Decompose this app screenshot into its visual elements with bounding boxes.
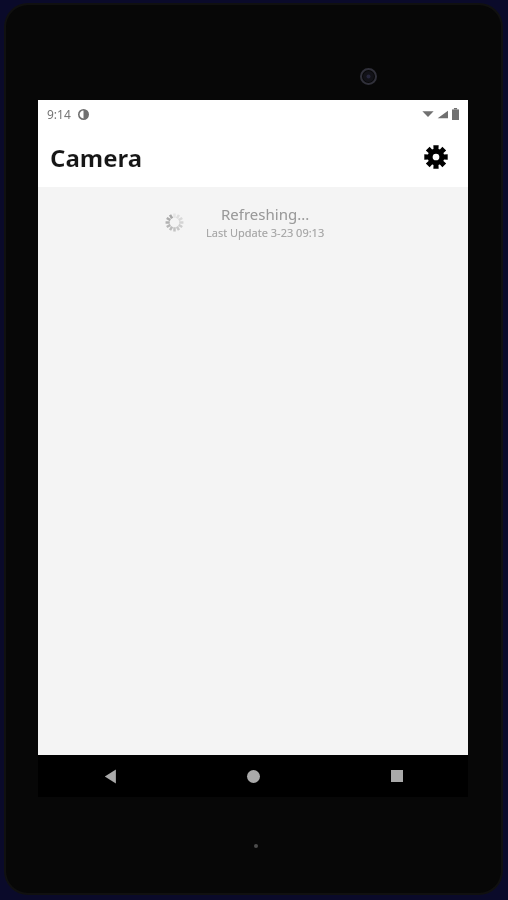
staticText: Refreshing... (221, 204, 310, 224)
staticText: Camera (50, 141, 143, 174)
button[interactable]: Back (38, 755, 182, 797)
button[interactable]: Refreshing... (165, 204, 341, 240)
staticText: 9:14 (47, 106, 71, 122)
button[interactable]: Home (182, 755, 325, 797)
button[interactable]: Settings (415, 136, 457, 178)
staticText: Last Update 3-23 09:13 (206, 225, 325, 240)
button[interactable]: Recent apps (325, 755, 468, 797)
